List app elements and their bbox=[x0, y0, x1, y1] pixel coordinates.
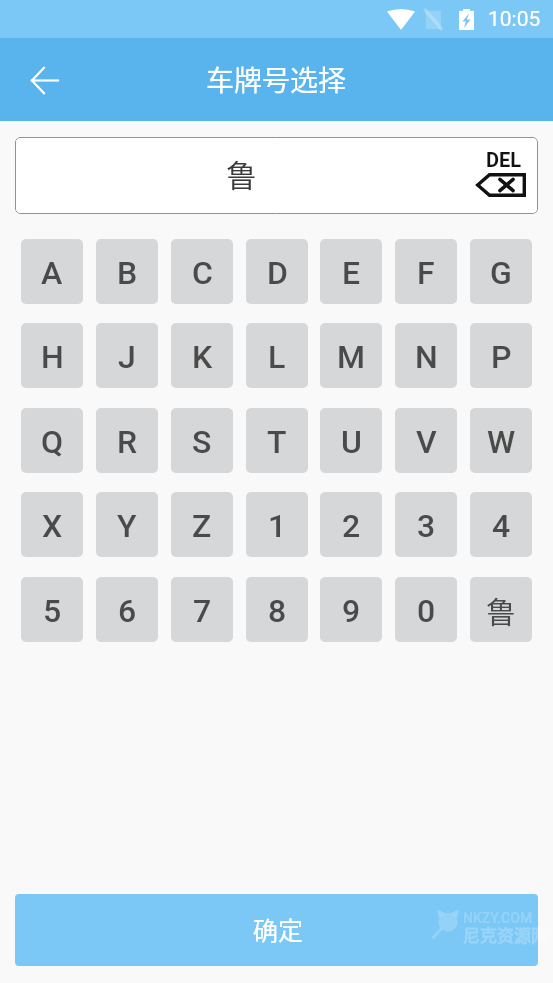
button[interactable]: R bbox=[96, 408, 158, 473]
staticText: A bbox=[41, 254, 63, 292]
button[interactable]: K bbox=[171, 323, 233, 388]
button[interactable]: 0 bbox=[395, 577, 457, 642]
staticText: K bbox=[192, 338, 213, 376]
staticText: U bbox=[341, 423, 362, 461]
button[interactable]: W bbox=[470, 408, 532, 473]
staticText: 车牌号选择 bbox=[206, 59, 347, 100]
staticText: 0 bbox=[417, 592, 436, 630]
staticText: 2 bbox=[342, 507, 361, 545]
button[interactable]: 2 bbox=[320, 492, 382, 557]
staticText: 尼克资源网 bbox=[463, 922, 548, 947]
staticText: S bbox=[192, 423, 212, 461]
button[interactable]: T bbox=[246, 408, 308, 473]
button[interactable]: 3 bbox=[395, 492, 457, 557]
button[interactable]: Q bbox=[21, 408, 83, 473]
button[interactable]: F bbox=[395, 239, 457, 304]
staticText: P bbox=[491, 338, 512, 376]
staticText: R bbox=[117, 423, 137, 461]
staticText: 8 bbox=[268, 592, 287, 630]
button[interactable]: Back bbox=[18, 54, 70, 106]
staticText: 确定 bbox=[253, 911, 304, 947]
staticText: F bbox=[417, 254, 435, 292]
staticText: L bbox=[268, 338, 286, 376]
staticText: M bbox=[337, 338, 366, 376]
staticText: 5 bbox=[43, 592, 62, 630]
button[interactable]: N bbox=[395, 323, 457, 388]
button[interactable]: U bbox=[320, 408, 382, 473]
staticText: 7 bbox=[193, 592, 212, 630]
button[interactable]: A bbox=[21, 239, 83, 304]
staticText: H bbox=[41, 338, 64, 376]
button[interactable]: J bbox=[96, 323, 158, 388]
staticText: N bbox=[415, 338, 438, 376]
staticText: Q bbox=[41, 423, 64, 461]
staticText: 4 bbox=[492, 507, 511, 545]
button[interactable]: C bbox=[171, 239, 233, 304]
staticText: Y bbox=[117, 507, 137, 545]
staticText: 3 bbox=[417, 507, 436, 545]
button[interactable]: 鲁 bbox=[470, 577, 532, 642]
staticText: X bbox=[42, 507, 63, 545]
button[interactable]: G bbox=[470, 239, 532, 304]
staticText: E bbox=[342, 254, 361, 292]
staticText: 6 bbox=[118, 592, 137, 630]
button[interactable]: D bbox=[246, 239, 308, 304]
staticText: DEL bbox=[486, 148, 522, 171]
button[interactable]: H bbox=[21, 323, 83, 388]
staticText: 鲁 bbox=[486, 588, 516, 631]
button[interactable]: X bbox=[21, 492, 83, 557]
button[interactable]: Z bbox=[171, 492, 233, 557]
button[interactable]: L bbox=[246, 323, 308, 388]
staticText: D bbox=[267, 254, 288, 292]
staticText: NKZY.COM bbox=[463, 910, 533, 926]
button[interactable]: 4 bbox=[470, 492, 532, 557]
button[interactable]: 确定 bbox=[15, 894, 538, 966]
staticText: V bbox=[416, 423, 437, 461]
button[interactable]: 1 bbox=[246, 492, 308, 557]
button[interactable]: 7 bbox=[171, 577, 233, 642]
button[interactable]: 9 bbox=[320, 577, 382, 642]
staticText: B bbox=[117, 254, 138, 292]
button[interactable]: 6 bbox=[96, 577, 158, 642]
button[interactable]: E bbox=[320, 239, 382, 304]
staticText: W bbox=[487, 423, 516, 461]
button[interactable]: P bbox=[470, 323, 532, 388]
staticText: 10:05 bbox=[488, 7, 541, 32]
button[interactable]: M bbox=[320, 323, 382, 388]
button[interactable]: Delete bbox=[469, 145, 527, 207]
staticText: C bbox=[192, 254, 213, 292]
staticText: G bbox=[490, 254, 512, 292]
staticText: 1 bbox=[268, 507, 287, 545]
button[interactable]: Y bbox=[96, 492, 158, 557]
staticText: 鲁 bbox=[226, 151, 257, 196]
button[interactable]: S bbox=[171, 408, 233, 473]
button[interactable]: V bbox=[395, 408, 457, 473]
button[interactable]: 8 bbox=[246, 577, 308, 642]
staticText: Z bbox=[192, 507, 212, 545]
staticText: J bbox=[118, 338, 136, 376]
button[interactable]: 5 bbox=[21, 577, 83, 642]
button[interactable]: B bbox=[96, 239, 158, 304]
staticText: 9 bbox=[342, 592, 361, 630]
staticText: T bbox=[267, 423, 287, 461]
